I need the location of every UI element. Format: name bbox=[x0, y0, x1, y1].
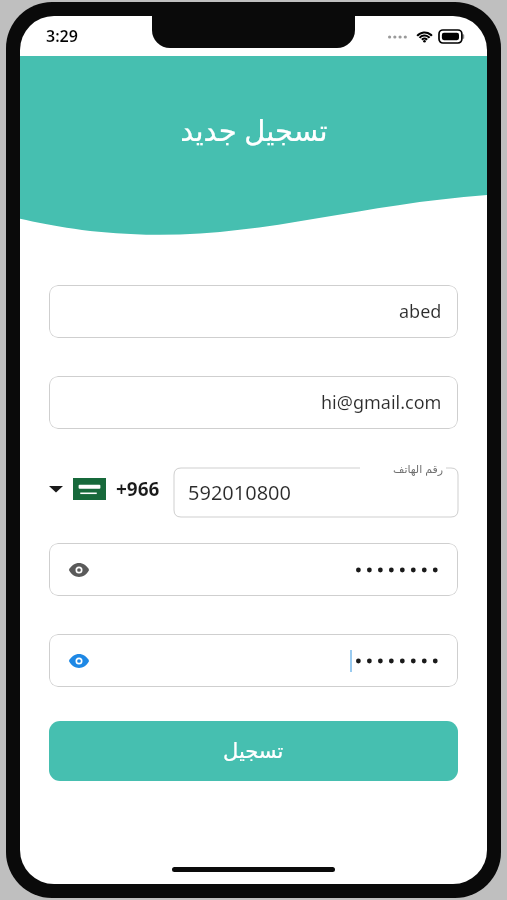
staticText: 592010800 bbox=[188, 479, 291, 506]
staticText: +966 bbox=[116, 476, 160, 502]
button[interactable]: تسجيل bbox=[49, 721, 458, 781]
button[interactable]: hi@gmail.com bbox=[49, 376, 458, 429]
button[interactable]: Toggle password visibility bbox=[49, 543, 458, 596]
button[interactable]: Toggle confirm password visibility bbox=[49, 634, 458, 687]
staticText: تسجيل bbox=[223, 739, 284, 763]
button[interactable]: abed bbox=[49, 285, 458, 338]
staticText: hi@gmail.com bbox=[321, 390, 442, 415]
button[interactable]: Select country code bbox=[49, 461, 160, 517]
staticText: رقم الهاتف bbox=[393, 461, 444, 476]
staticText: 3:29 bbox=[46, 25, 78, 47]
staticText: abed bbox=[399, 299, 442, 324]
staticText: تسجيل جديد bbox=[180, 110, 328, 149]
button[interactable]: Toggle password visibility bbox=[62, 553, 96, 587]
button[interactable]: Toggle confirm password visibility bbox=[62, 644, 96, 678]
